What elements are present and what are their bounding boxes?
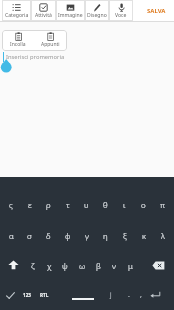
staticText: Inserisci promemoria	[6, 53, 65, 61]
staticText: Voce	[115, 12, 127, 19]
button[interactable]: φ	[58, 220, 77, 250]
staticText: η	[103, 230, 108, 241]
button[interactable]: ζ	[25, 250, 41, 280]
staticText: α	[9, 230, 14, 241]
staticText: RTL	[40, 292, 49, 298]
button[interactable]: ν	[106, 250, 122, 280]
staticText: 123	[23, 292, 31, 298]
staticText: σ	[27, 230, 32, 241]
button[interactable]: β	[90, 250, 106, 280]
staticText: ω	[79, 260, 86, 271]
staticText: ,	[140, 290, 142, 300]
button[interactable]: υ	[77, 189, 96, 220]
button[interactable]: ,	[134, 280, 147, 310]
staticText: τ	[66, 199, 70, 210]
button[interactable]: Appunti	[34, 30, 66, 51]
button[interactable]: τ	[58, 189, 77, 220]
staticText: Categoria	[5, 12, 29, 19]
button[interactable]: ι	[115, 189, 134, 220]
staticText: SALVA	[147, 7, 166, 15]
button[interactable]: Disegno	[85, 0, 109, 21]
button[interactable]: Voce	[109, 0, 133, 21]
staticText: θ	[103, 199, 108, 210]
staticText: ς	[9, 199, 13, 210]
staticText: ζ	[31, 260, 35, 271]
button[interactable]: ω	[74, 250, 90, 280]
button[interactable]: RTL	[36, 280, 52, 310]
button[interactable]: δ	[39, 220, 58, 250]
button[interactable]: ε	[20, 189, 39, 220]
button[interactable]	[147, 252, 169, 278]
button[interactable]: η	[96, 220, 115, 250]
staticText: Attività	[35, 12, 52, 19]
button[interactable]: Incolla	[2, 30, 34, 51]
staticText: ν	[112, 260, 116, 271]
staticText: Appunti	[41, 41, 60, 48]
staticText: Disegno	[87, 12, 107, 19]
button[interactable]	[145, 280, 165, 310]
staticText: λ	[161, 230, 165, 241]
staticText: ψ	[62, 260, 68, 271]
button[interactable]: Categoria	[2, 0, 31, 21]
staticText: γ	[85, 230, 89, 241]
button[interactable]: λ	[153, 220, 172, 250]
button[interactable]: ς	[2, 189, 20, 220]
button[interactable]: j	[104, 280, 118, 310]
button[interactable]	[56, 280, 110, 310]
button[interactable]: Attività	[31, 0, 56, 21]
button[interactable]: ο	[134, 189, 153, 220]
staticText: δ	[46, 230, 51, 241]
button[interactable]: ρ	[39, 189, 58, 220]
button[interactable]: 123	[19, 280, 35, 310]
button[interactable]	[3, 252, 23, 278]
button[interactable]: SALVA	[147, 7, 166, 15]
button[interactable]: θ	[96, 189, 115, 220]
staticText: π	[160, 199, 165, 210]
button[interactable]: Immagine	[56, 0, 85, 21]
staticText: ι	[123, 199, 126, 210]
staticText: j	[110, 290, 112, 300]
staticText: ξ	[123, 230, 127, 241]
staticText: Immagine	[58, 12, 83, 19]
button[interactable]: α	[2, 220, 20, 250]
button[interactable]: γ	[77, 220, 96, 250]
button[interactable]: χ	[41, 250, 57, 280]
staticText: χ	[47, 260, 52, 271]
button[interactable]: π	[153, 189, 172, 220]
staticText: β	[96, 260, 101, 271]
button[interactable]: .	[122, 280, 135, 310]
staticText: μ	[128, 260, 133, 271]
button[interactable]: ξ	[115, 220, 134, 250]
staticText: .	[128, 290, 130, 300]
button[interactable]	[3, 280, 18, 310]
staticText: ρ	[46, 199, 51, 210]
button[interactable]: σ	[20, 220, 39, 250]
staticText: Incolla	[10, 41, 26, 48]
button[interactable]: ψ	[57, 250, 73, 280]
staticText: φ	[65, 230, 71, 241]
staticText: ο	[141, 199, 146, 210]
button[interactable]: κ	[134, 220, 153, 250]
staticText: υ	[84, 199, 89, 210]
staticText: κ	[142, 230, 146, 241]
button[interactable]: μ	[122, 250, 138, 280]
staticText: ε	[28, 199, 32, 210]
